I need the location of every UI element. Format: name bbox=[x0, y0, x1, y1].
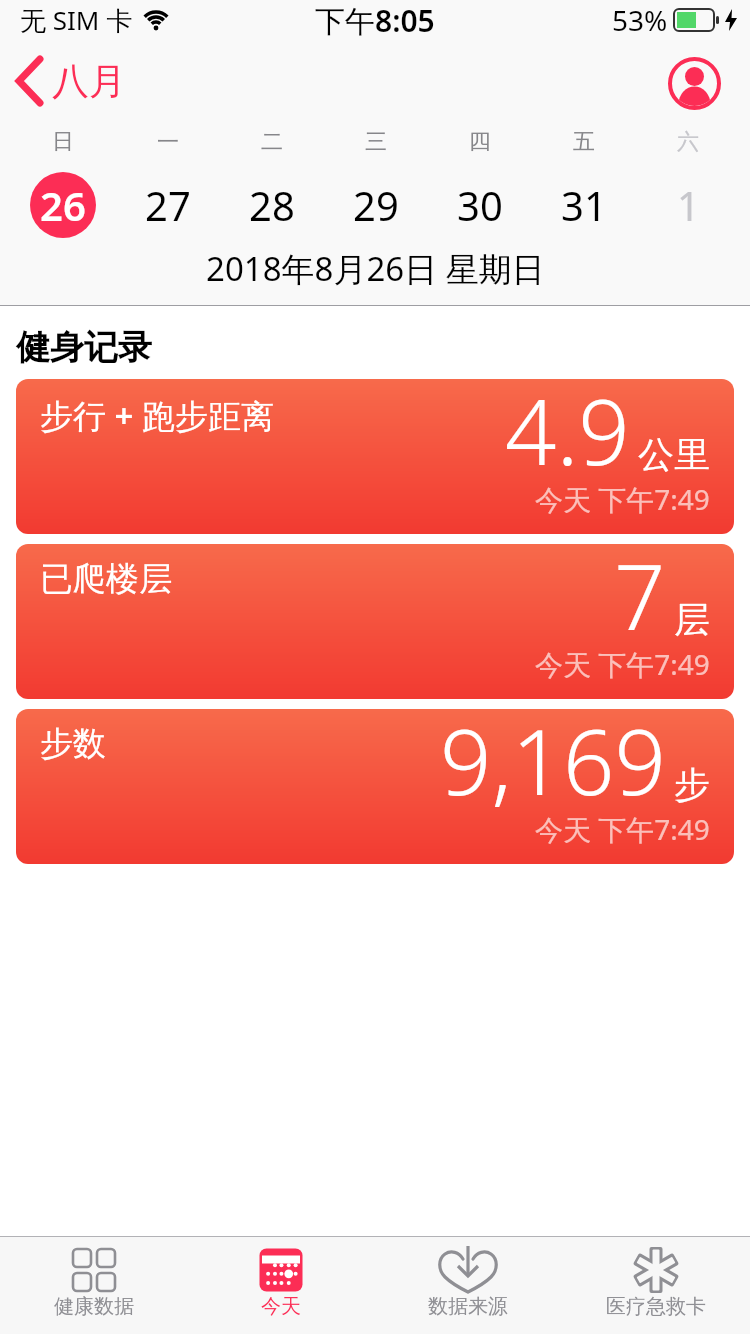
staticText: 53% bbox=[612, 1, 668, 39]
staticText: 27 bbox=[145, 178, 191, 232]
staticText: 六 bbox=[677, 128, 699, 156]
button[interactable]: 步行 + 跑步距离 bbox=[16, 379, 734, 534]
staticText: 日 bbox=[52, 128, 74, 156]
staticText: 步 bbox=[674, 762, 710, 807]
staticText: 五 bbox=[573, 128, 595, 156]
staticText: 28 bbox=[249, 178, 295, 232]
button[interactable]: 28 bbox=[249, 178, 295, 232]
staticText: 今天 下午7:49 bbox=[535, 480, 710, 518]
staticText: 2018年8月26日 星期日 bbox=[206, 246, 545, 291]
staticText: 已爬楼层 bbox=[40, 558, 172, 600]
staticText: 一 bbox=[157, 128, 179, 156]
staticText: 26 bbox=[40, 178, 86, 232]
staticText: 公里 bbox=[638, 432, 710, 477]
staticText: 1 bbox=[677, 178, 700, 232]
button[interactable]: 步数 bbox=[16, 709, 734, 864]
staticText: 健康数据 bbox=[54, 1294, 134, 1319]
staticText: 29 bbox=[353, 178, 399, 232]
staticText: 30 bbox=[457, 178, 503, 232]
button[interactable]: 26 bbox=[30, 172, 96, 238]
staticText: 今天 下午7:49 bbox=[535, 645, 710, 683]
staticText: 八月 bbox=[52, 58, 126, 105]
staticText: 数据来源 bbox=[428, 1294, 508, 1319]
button[interactable]: 已爬楼层 bbox=[16, 544, 734, 699]
staticText: 三 bbox=[365, 128, 387, 156]
staticText: 步数 bbox=[40, 723, 106, 765]
button[interactable] bbox=[668, 57, 721, 110]
staticText: 31 bbox=[561, 178, 607, 232]
staticText: 步行 + 跑步距离 bbox=[40, 393, 275, 438]
staticText: 健身记录 bbox=[16, 326, 152, 369]
staticText: 今天 bbox=[261, 1294, 301, 1319]
staticText: 层 bbox=[674, 597, 710, 642]
staticText: 无 SIM 卡 bbox=[20, 2, 133, 38]
staticText: 今天 下午7:49 bbox=[535, 810, 710, 848]
staticText: 下午8:05 bbox=[315, 0, 435, 40]
button[interactable]: 31 bbox=[561, 178, 607, 232]
button[interactable]: 今天 bbox=[187, 1246, 374, 1334]
button[interactable]: 八月 bbox=[14, 56, 126, 106]
button[interactable]: 27 bbox=[145, 178, 191, 232]
staticText: 7 bbox=[614, 544, 666, 657]
staticText: 医疗急救卡 bbox=[606, 1294, 706, 1319]
button[interactable]: 1 bbox=[677, 178, 700, 232]
staticText: 二 bbox=[261, 128, 283, 156]
staticText: 4.9 bbox=[505, 379, 630, 492]
staticText: 四 bbox=[469, 128, 491, 156]
button[interactable]: 数据来源 bbox=[374, 1246, 562, 1334]
button[interactable]: 医疗急救卡 bbox=[562, 1246, 750, 1334]
staticText: 9,169 bbox=[440, 709, 666, 822]
button[interactable]: 健康数据 bbox=[0, 1246, 187, 1334]
button[interactable]: 29 bbox=[353, 178, 399, 232]
button[interactable]: 30 bbox=[457, 178, 503, 232]
